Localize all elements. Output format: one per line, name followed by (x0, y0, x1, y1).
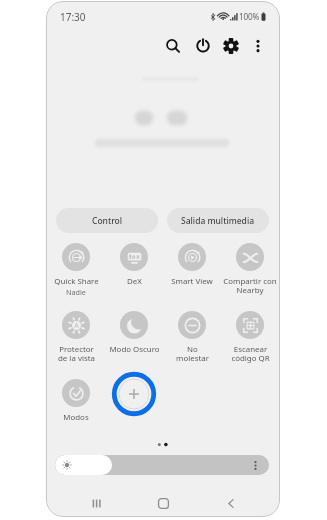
button[interactable]: Recents (82, 489, 110, 517)
button[interactable]: Back (217, 489, 245, 517)
staticText: Smart View (171, 276, 213, 287)
staticText: Quick Share (54, 276, 99, 287)
button[interactable]: Quick Share (47, 243, 105, 297)
button[interactable]: Power (190, 32, 216, 58)
button[interactable]: No molestar (163, 311, 221, 364)
staticText: 100% (239, 11, 260, 22)
button[interactable]: Escanear código QR (221, 311, 279, 364)
button[interactable]: Add tile (111, 371, 157, 417)
staticText: Control (92, 215, 123, 227)
staticText: Salida multimedia (181, 215, 255, 227)
staticText: 17:30 (60, 10, 86, 24)
staticText: DeX (127, 276, 142, 287)
staticText: Protector de la vista (58, 344, 95, 364)
button[interactable]: Salida multimedia (167, 208, 269, 233)
button[interactable]: Search (160, 33, 186, 59)
staticText: Compartir con Nearby (223, 276, 277, 296)
button[interactable]: Settings (218, 33, 244, 59)
staticText: No molestar (176, 344, 209, 364)
button[interactable]: Home (149, 489, 177, 517)
button[interactable]: More options (245, 33, 271, 59)
button[interactable]: Modos (47, 379, 105, 423)
staticText: Escanear código QR (231, 344, 270, 364)
button[interactable]: Compartir con Nearby (221, 243, 279, 296)
button[interactable]: Smart View (163, 243, 221, 287)
staticText: Nadie (66, 287, 86, 297)
button[interactable]: Modo Oscuro (105, 311, 163, 355)
button[interactable]: Protector de la vista (47, 311, 105, 364)
staticText: Modo Oscuro (109, 344, 160, 355)
button[interactable]: DeX (105, 243, 163, 287)
button[interactable] (55, 455, 269, 475)
staticText: Modos (63, 412, 89, 423)
button[interactable]: Control (56, 208, 158, 233)
